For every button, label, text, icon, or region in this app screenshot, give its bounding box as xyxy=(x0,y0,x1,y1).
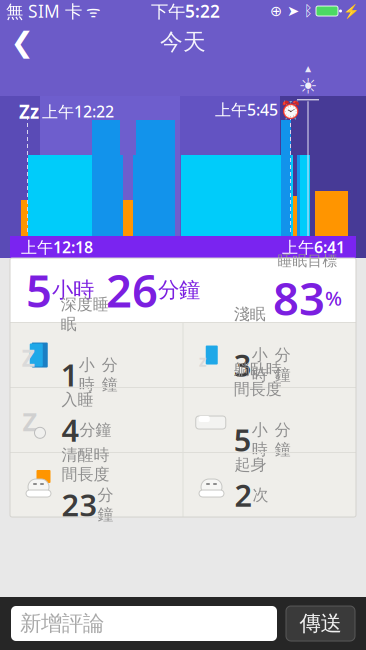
staticText: 淺眠 xyxy=(234,304,266,324)
staticText: 今天 xyxy=(160,28,206,56)
staticText: 分鐘 xyxy=(275,420,291,459)
staticText: 4 xyxy=(61,409,79,450)
staticText: ▲ xyxy=(305,64,311,73)
button[interactable]: 躺臥時間長度 xyxy=(183,388,355,452)
staticText: 5 xyxy=(234,419,252,460)
staticText: 分鐘 xyxy=(97,485,113,524)
staticText: ⊕ ➤ ᛒ xyxy=(270,3,313,19)
staticText: 次 xyxy=(252,485,268,505)
staticText: 新增評論 xyxy=(20,610,104,637)
button[interactable]: 清醒時間長度 xyxy=(10,453,182,517)
button[interactable]: 返回 xyxy=(0,22,44,62)
staticText: 分鐘 xyxy=(79,420,111,440)
staticText: ⏰ xyxy=(280,100,302,119)
button[interactable]: Z xyxy=(10,323,182,387)
staticText: z xyxy=(199,350,207,371)
staticText: 2 xyxy=(234,474,252,515)
staticText: 分鐘 xyxy=(275,345,291,384)
staticText: 小時 xyxy=(79,355,95,394)
staticText: 上午6:41 xyxy=(282,236,345,258)
staticText: 小時 xyxy=(252,420,268,459)
staticText: 23 xyxy=(61,484,97,525)
staticText: 83 xyxy=(273,268,325,328)
staticText: 分鐘 xyxy=(102,355,118,394)
staticText: Z xyxy=(22,405,37,438)
staticText: 上午5:45 xyxy=(215,99,278,120)
staticText: 傳送 xyxy=(299,610,341,637)
staticText: Z xyxy=(22,343,35,373)
staticText: 1 xyxy=(61,354,79,395)
button[interactable]: z xyxy=(183,323,355,387)
staticText: 清醒時間長度 xyxy=(61,445,109,484)
staticText: 起身 xyxy=(234,455,266,474)
staticText: % xyxy=(325,285,342,311)
staticText: 3 xyxy=(234,344,252,385)
staticText: 5 xyxy=(26,260,52,320)
staticText: 上午12:18 xyxy=(21,236,93,258)
staticText: ⚡ xyxy=(343,3,360,19)
staticText: 分鐘 xyxy=(158,277,200,303)
staticText: Zz xyxy=(19,99,39,124)
staticText: 睡眠目標 xyxy=(277,252,337,270)
staticText: 無 SIM 卡 xyxy=(6,0,82,22)
staticText: 深度睡眠 xyxy=(61,295,109,334)
staticText: ☀ xyxy=(298,74,317,98)
staticText: 26 xyxy=(106,260,158,320)
button[interactable]: 起身 xyxy=(183,453,355,517)
staticText: ❮ xyxy=(10,26,33,58)
staticText: 入睡 xyxy=(61,390,93,409)
staticText: 躺臥時間長度 xyxy=(234,360,282,399)
staticText: 上午12:22 xyxy=(42,101,114,122)
staticText: 下午5:22 xyxy=(151,0,220,22)
button[interactable]: 傳送 xyxy=(286,606,355,641)
staticText: 小時 xyxy=(52,277,94,303)
staticText: ᯤ xyxy=(82,0,101,22)
button[interactable]: 新增評論 xyxy=(11,606,277,641)
button[interactable]: Z xyxy=(10,388,182,452)
staticText: 小時 xyxy=(252,345,268,384)
